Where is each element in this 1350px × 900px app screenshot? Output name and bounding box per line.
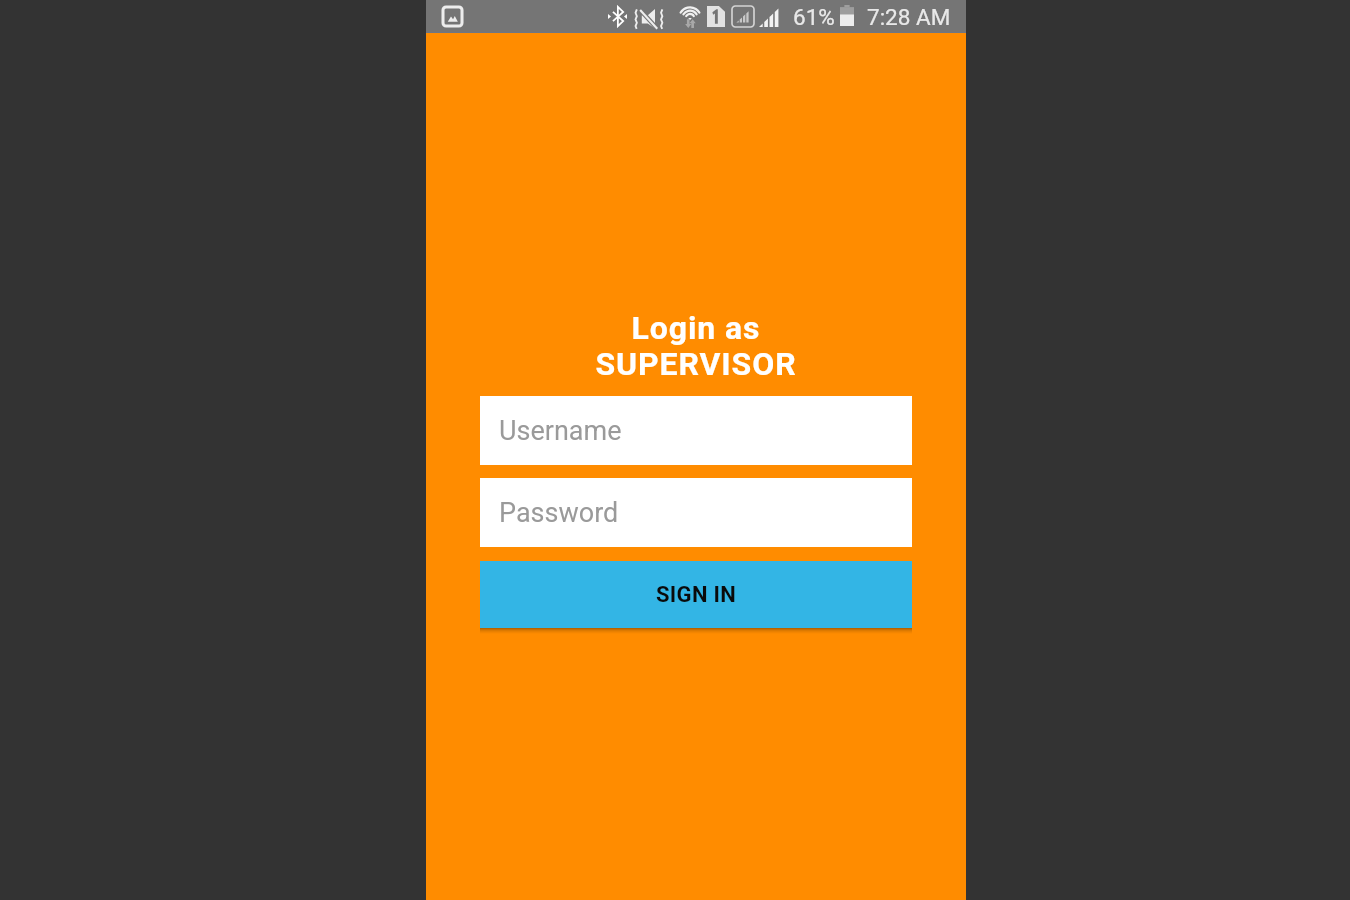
other: Battery 61 percent: [840, 5, 854, 26]
other: Bluetooth on: [608, 6, 627, 27]
button[interactable]: SIGN IN: [480, 561, 912, 628]
staticText: 61%: [793, 4, 835, 30]
staticText: 7:28 AM: [867, 4, 951, 30]
other: Ringer muted, vibrate: [634, 8, 664, 30]
staticText: Password: [499, 497, 619, 529]
other: SIM card 1: [707, 6, 725, 27]
staticText: Username: [499, 415, 622, 447]
other: Cellular signal: [759, 7, 780, 27]
other: Wi-Fi connected: [679, 6, 701, 28]
button[interactable]: Password: [480, 478, 912, 547]
staticText: SIGN IN: [656, 582, 737, 608]
other: Mobile data signal: [732, 6, 754, 27]
other: Screenshot captured: [443, 7, 462, 26]
staticText: Login as SUPERVISOR: [595, 309, 797, 383]
button[interactable]: Username: [480, 396, 912, 465]
